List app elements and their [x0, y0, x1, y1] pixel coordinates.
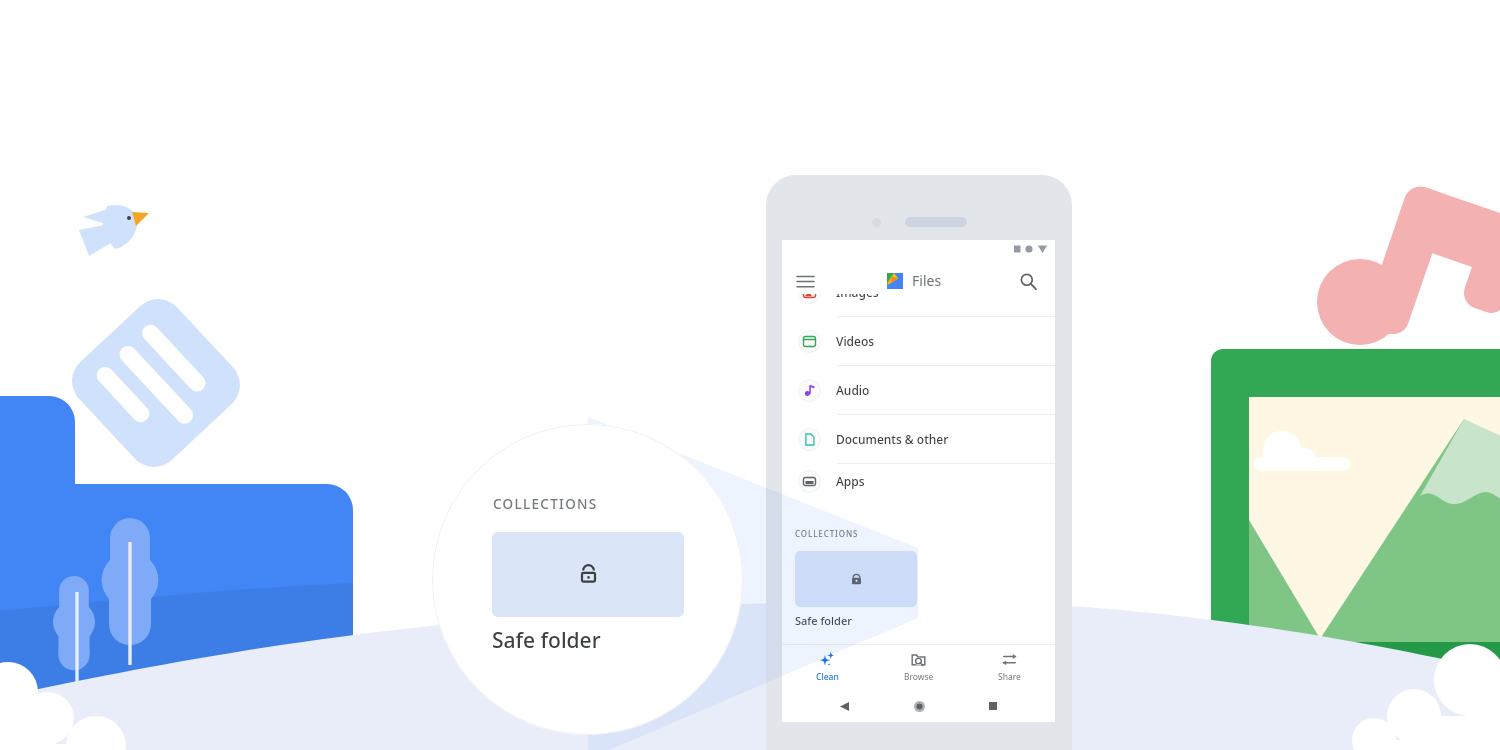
button[interactable]: Audio [782, 366, 1055, 414]
button[interactable]: Apps [782, 464, 1055, 498]
staticText: Apps [836, 473, 865, 489]
button[interactable]: Documents & other [782, 415, 1055, 463]
button[interactable]: Home [906, 693, 932, 719]
button[interactable]: Back [831, 693, 857, 719]
button[interactable]: Menu [791, 267, 819, 295]
button[interactable]: Browse [873, 645, 964, 690]
staticText: Browse [904, 671, 934, 683]
staticText: COLLECTIONS [493, 495, 598, 513]
staticText: Files [912, 271, 942, 290]
staticText: Audio [836, 382, 870, 398]
staticText: Share [998, 671, 1021, 683]
button[interactable]: Safe folder [492, 532, 684, 617]
staticText: Videos [836, 333, 875, 349]
staticText: Documents & other [836, 431, 949, 447]
button[interactable]: Safe folder [795, 551, 917, 607]
staticText: Clean [816, 671, 839, 683]
staticText: Safe folder [492, 626, 601, 655]
button[interactable]: Images [782, 294, 1055, 316]
button[interactable]: Search [1014, 267, 1042, 295]
staticText: Images [836, 294, 879, 300]
button[interactable]: Clean [782, 645, 873, 690]
button[interactable]: Videos [782, 317, 1055, 365]
staticText: COLLECTIONS [795, 528, 859, 539]
button[interactable]: Share [964, 645, 1055, 690]
button[interactable]: Recents [980, 693, 1006, 719]
staticText: Safe folder [795, 613, 852, 628]
